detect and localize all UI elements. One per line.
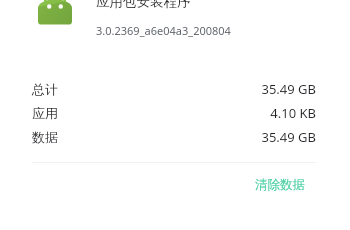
staticText: 35.49 GB [261,128,316,146]
staticText: 总计 [32,81,58,97]
staticText: 3.0.2369_a6e04a3_200804 [96,23,231,38]
staticText: 4.10 KB [270,104,316,122]
button[interactable]: 应用 [32,102,316,124]
staticText: 35.49 GB [261,80,316,98]
button[interactable]: 数据 [32,126,316,148]
staticText: 数据 [32,129,58,145]
button[interactable]: 清除数据 [243,172,317,198]
staticText: 应用包安装程序 [96,0,191,10]
button[interactable]: 总计 [32,78,316,100]
staticText: 应用 [32,105,58,121]
other: 应用图标 [38,0,72,33]
staticText: 清除数据 [255,177,305,193]
